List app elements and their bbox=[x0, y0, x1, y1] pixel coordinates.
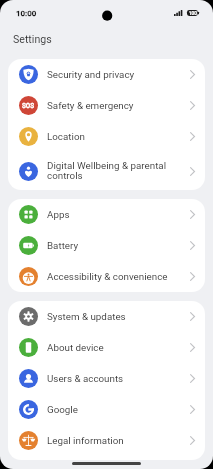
button[interactable]: Accessibility & convenience bbox=[8, 261, 205, 292]
staticText: Settings bbox=[13, 33, 52, 45]
button[interactable]: About device bbox=[8, 332, 205, 363]
button[interactable]: Location bbox=[8, 121, 205, 152]
button[interactable]: Security and privacy bbox=[8, 59, 205, 90]
button[interactable]: Users & accounts bbox=[8, 363, 205, 394]
button[interactable]: SOS bbox=[8, 90, 205, 121]
staticText: 100 bbox=[189, 11, 197, 16]
staticText: Digital Wellbeing & parental controls bbox=[47, 160, 190, 182]
staticText: Safety & emergency bbox=[47, 100, 190, 111]
staticText: Google bbox=[47, 404, 190, 415]
staticText: 10:00 bbox=[16, 9, 37, 18]
staticText: System & updates bbox=[47, 311, 190, 322]
button[interactable]: Google bbox=[8, 394, 205, 425]
button[interactable]: Apps bbox=[8, 199, 205, 230]
staticText: Security and privacy bbox=[47, 69, 190, 80]
button[interactable]: System & updates bbox=[8, 301, 205, 332]
staticText: Battery bbox=[47, 240, 190, 251]
staticText: SOS bbox=[22, 102, 35, 110]
staticText: About device bbox=[47, 342, 190, 353]
staticText: Apps bbox=[47, 209, 190, 220]
staticText: Legal information bbox=[47, 435, 190, 446]
button[interactable]: Battery bbox=[8, 230, 205, 261]
staticText: Location bbox=[47, 131, 190, 142]
staticText: Users & accounts bbox=[47, 373, 190, 384]
staticText: Accessibility & convenience bbox=[47, 271, 190, 282]
button[interactable]: Digital Wellbeing & parental controls bbox=[8, 152, 205, 190]
button[interactable]: Legal information bbox=[8, 425, 205, 456]
